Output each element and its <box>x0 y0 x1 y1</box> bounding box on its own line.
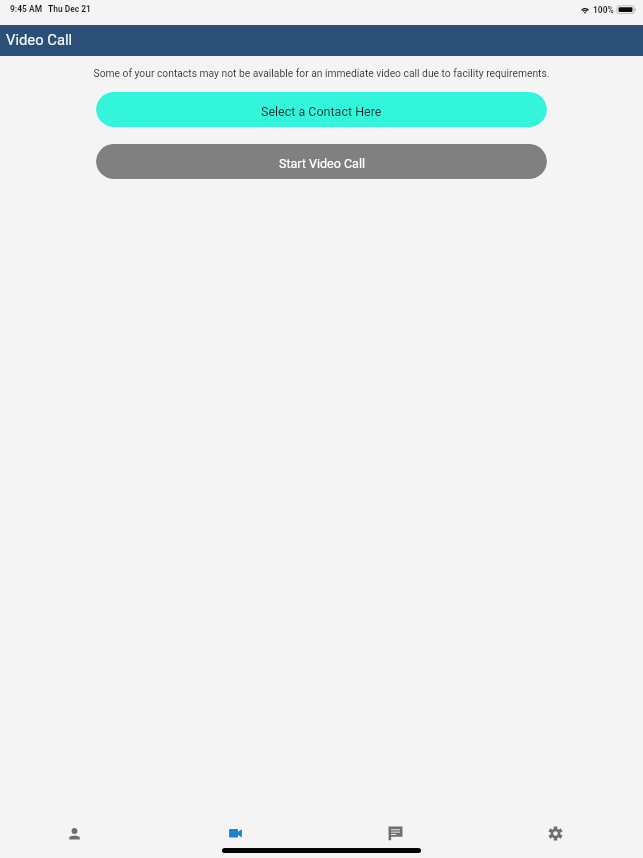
staticText: 100% <box>593 5 614 15</box>
staticText: Thu Dec 21 <box>48 4 91 14</box>
button[interactable]: Messages <box>321 805 469 858</box>
button[interactable]: Select a Contact Here <box>96 92 547 127</box>
button[interactable]: Settings <box>481 805 630 858</box>
button[interactable]: Contacts <box>0 805 149 858</box>
staticText: Select a Contact Here <box>261 104 382 119</box>
button[interactable]: Video Call <box>160 805 310 858</box>
button[interactable]: Start Video Call <box>96 144 547 179</box>
staticText: 9:45 <box>10 4 27 14</box>
staticText: Video Call <box>6 31 73 48</box>
staticText: AM <box>29 4 42 14</box>
staticText: Start Video Call <box>279 156 365 171</box>
staticText: Some of your contacts may not be availab… <box>40 67 603 79</box>
